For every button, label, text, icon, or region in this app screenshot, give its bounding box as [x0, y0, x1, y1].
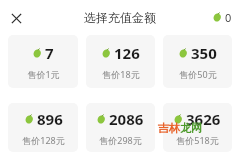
button[interactable]: 126	[86, 35, 155, 88]
staticText: 售价18元	[102, 68, 140, 80]
button[interactable]: 350	[163, 35, 232, 88]
staticText: 龙网	[180, 121, 202, 135]
staticText: 2086	[109, 109, 144, 129]
button[interactable]: 3626	[163, 103, 232, 152]
staticText: 售价298元	[99, 134, 142, 146]
staticText: 售价1元	[27, 68, 60, 80]
button[interactable]: 0	[213, 10, 232, 25]
staticText: 售价128元	[22, 134, 65, 146]
staticText: 吉林	[158, 121, 180, 135]
button[interactable]: 7	[8, 35, 78, 88]
staticText: 126	[114, 43, 140, 63]
staticText: 选择充值金额	[84, 10, 156, 25]
staticText: 896	[37, 109, 63, 129]
button[interactable]: 896	[8, 103, 78, 152]
staticText: 0	[225, 10, 232, 25]
staticText: 售价518元	[176, 134, 219, 146]
button[interactable]: 2086	[86, 103, 155, 152]
staticText: 3626	[186, 109, 221, 129]
staticText: 售价50元	[179, 68, 217, 80]
staticText: 350	[191, 43, 217, 63]
button[interactable]: Close	[6, 8, 26, 28]
staticText: 7	[45, 43, 54, 63]
